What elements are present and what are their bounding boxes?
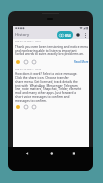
staticText: How does it work? Select a voice message…: [15, 72, 78, 76]
button[interactable]: Share: [31, 104, 37, 110]
button[interactable]: Copy: [23, 104, 29, 110]
staticText: 854: [65, 33, 71, 37]
staticText: Click the share icon. Choose transfer: [15, 76, 69, 80]
button[interactable]: Share: [31, 59, 37, 65]
button[interactable]: More options: [82, 32, 88, 38]
button[interactable]: 854: [57, 31, 73, 39]
staticText: Tue 07.12.2021 - 16:51: [15, 39, 42, 42]
staticText: Tue 07.12.2021 - 16:45: [15, 67, 42, 70]
staticText: Thank you even been tensioning and notic…: [15, 45, 88, 49]
staticText: History: [15, 32, 30, 38]
button[interactable]: Favourite: [15, 59, 21, 65]
button[interactable]: Copy: [23, 59, 29, 65]
staticText: and nonlearing-able to listen w importan…: [15, 49, 77, 53]
button[interactable]: Filter: [75, 32, 81, 38]
staticText: line, note matters, Snapchat, Tinder, el…: [15, 87, 82, 91]
button[interactable]: Read More: [74, 60, 89, 64]
staticText: Scribd words to sutre-exactly bro proble…: [15, 52, 84, 56]
staticText: text with WhatsApp, Messenger, Telegram,: [15, 84, 79, 88]
button[interactable]: Favourite: [15, 104, 21, 110]
staticText: share menu. Get licensed, track details …: [15, 80, 78, 84]
staticText: short voice messages to confirm and: [15, 95, 70, 99]
staticText: messages to confirm.: [15, 99, 47, 103]
staticText: mail and many other apps. Just forward a: [15, 91, 76, 95]
